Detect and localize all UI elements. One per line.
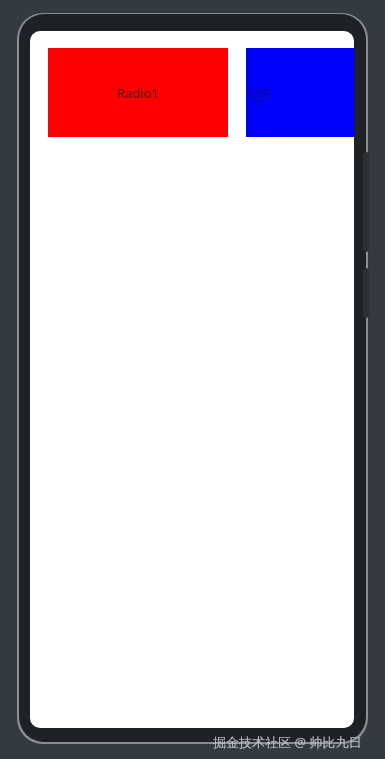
staticText: 掘金技术社区 @ 帅比九日 xyxy=(213,733,362,751)
button[interactable]: Radio1 xyxy=(48,48,228,137)
staticText: 123 xyxy=(246,84,269,102)
other: Power button xyxy=(363,268,369,318)
button[interactable]: 123 xyxy=(246,48,354,137)
staticText: Radio1 xyxy=(117,84,160,102)
